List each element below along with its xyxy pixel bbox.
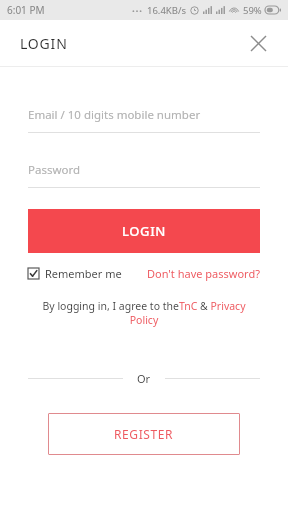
button[interactable]: Email / 10 digits mobile number [28, 107, 260, 133]
staticText: By logging in, I agree to theTnC & Priva… [34, 299, 254, 327]
staticText: LOGIN [122, 222, 167, 240]
staticText: 6:01 PM [7, 3, 45, 17]
button[interactable]: Close [242, 27, 274, 59]
button[interactable]: REGISTER [48, 413, 240, 455]
button[interactable]: LOGIN [28, 209, 260, 253]
staticText: Password [28, 162, 81, 178]
staticText: LOGIN [20, 34, 68, 53]
staticText: Remember me [45, 266, 122, 281]
staticText: Don't have password? [147, 266, 260, 281]
staticText: Or [137, 371, 151, 386]
button[interactable]: Don't have password? [147, 266, 260, 281]
button[interactable]: Password [28, 162, 260, 188]
staticText: Email / 10 digits mobile number [28, 107, 201, 123]
staticText: REGISTER [114, 426, 174, 442]
button[interactable]: By logging in, I agree to theTnC & Priva… [34, 299, 254, 327]
button[interactable]: Remember me [28, 266, 122, 281]
staticText: 16.4KB/s [147, 4, 186, 17]
staticText: 59% [243, 4, 262, 17]
